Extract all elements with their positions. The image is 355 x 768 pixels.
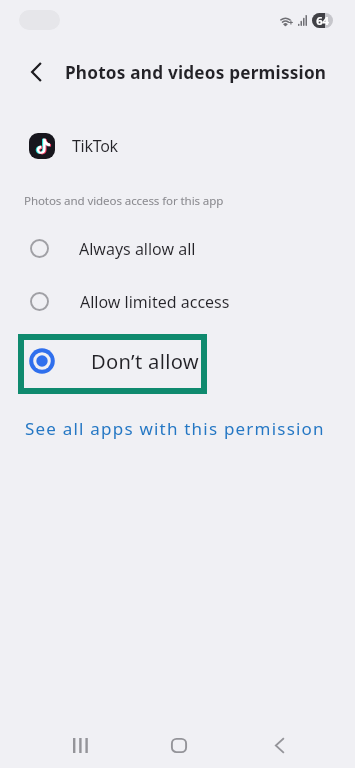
- button[interactable]: Back: [255, 721, 303, 768]
- staticText: 64: [312, 13, 333, 28]
- button[interactable]: TikTok: [0, 124, 355, 168]
- button[interactable]: See all apps with this permission: [0, 410, 355, 444]
- staticText: Don’t allow: [91, 347, 200, 375]
- button[interactable]: Back: [13, 48, 60, 95]
- button[interactable]: Don’t allow: [18, 334, 207, 394]
- button[interactable]: Recent apps: [56, 721, 104, 768]
- staticText: Photos and videos permission: [65, 61, 327, 84]
- staticText: Allow limited access: [80, 291, 230, 313]
- staticText: See all apps with this permission: [25, 417, 325, 440]
- staticText: TikTok: [72, 135, 118, 157]
- staticText: Photos and videos access for this app: [24, 193, 224, 209]
- button[interactable]: Home: [155, 721, 203, 768]
- button[interactable]: Always allow all: [0, 229, 355, 269]
- staticText: Always allow all: [79, 238, 196, 260]
- button[interactable]: Allow limited access: [0, 282, 355, 322]
